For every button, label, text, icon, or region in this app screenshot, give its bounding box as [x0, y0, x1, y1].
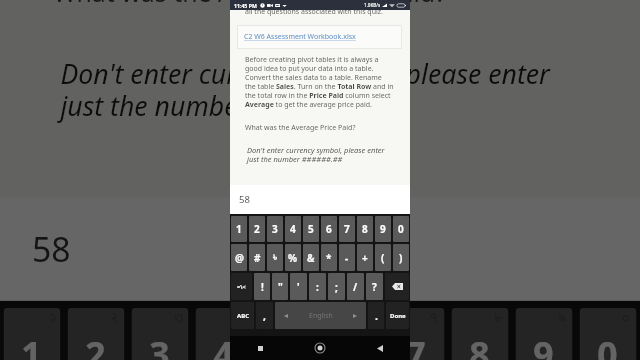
button[interactable]: * [321, 244, 337, 271]
button[interactable]: - [339, 244, 355, 271]
button[interactable]: Done [386, 302, 409, 329]
staticText: ; [335, 280, 338, 294]
button[interactable]: ? [366, 273, 383, 300]
button[interactable]: Recents [230, 336, 290, 360]
button[interactable]: , [256, 302, 273, 329]
staticText: all the questions associated with this q… [245, 7, 383, 17]
staticText: 5 [308, 222, 314, 236]
button[interactable]: 5 [260, 308, 316, 360]
button[interactable]: Home [290, 336, 350, 360]
staticText: 8 [469, 329, 491, 360]
button[interactable]: 7 [388, 308, 444, 360]
staticText: Don't enter currency symbol, please ente… [247, 145, 392, 164]
button[interactable]: 4 [196, 308, 252, 360]
button[interactable]: 4 [285, 216, 301, 242]
button[interactable]: C2 W6 Assessment Workbook.xlsx [237, 25, 402, 49]
staticText: ৯ [387, 216, 390, 221]
staticText: 58 [239, 193, 250, 206]
button[interactable]: English [275, 302, 366, 329]
staticText: , [263, 309, 266, 323]
staticText: Before creating pivot tables it is alway… [245, 55, 394, 109]
button[interactable]: & [303, 244, 319, 271]
staticText: . [375, 309, 378, 323]
button[interactable]: : [309, 273, 326, 300]
button[interactable]: # [249, 244, 265, 271]
staticText: / [353, 280, 358, 294]
staticText: 8 [362, 222, 368, 236]
staticText: ! [261, 280, 264, 294]
button[interactable]: 58 [230, 185, 410, 214]
button[interactable]: Back [350, 336, 410, 360]
staticText: # [254, 251, 261, 265]
staticText: 1 [21, 329, 43, 360]
button[interactable]: 1 [4, 308, 60, 360]
button[interactable]: ' [290, 273, 307, 300]
staticText: 11:45 PM [234, 2, 257, 9]
staticText: Don't enter currency symbol, please ente… [60, 56, 576, 123]
button[interactable]: ) [393, 244, 409, 271]
button[interactable]: 5 [303, 216, 319, 242]
staticText: What was the Average Price Paid? [53, 0, 448, 13]
button[interactable]: 0 [393, 216, 409, 242]
button[interactable]: ; [328, 273, 345, 300]
staticText: ৭ [351, 216, 354, 221]
staticText: 0 [597, 329, 619, 360]
staticText: ) [399, 251, 403, 265]
button[interactable]: 0 [580, 308, 636, 360]
button[interactable]: 9 [516, 308, 572, 360]
staticText: 0 [398, 222, 404, 236]
button[interactable]: / [347, 273, 364, 300]
staticText: 7 [405, 329, 427, 360]
button[interactable]: . [368, 302, 384, 329]
staticText: " [278, 280, 283, 294]
button[interactable]: 3 [132, 308, 188, 360]
button[interactable]: 9 [375, 216, 391, 242]
button[interactable]: 2 [249, 216, 265, 242]
staticText: ৪ [238, 308, 249, 326]
button[interactable]: 8 [452, 308, 508, 360]
button[interactable]: 8 [357, 216, 373, 242]
staticText: * [326, 251, 332, 265]
button[interactable]: 2 [68, 308, 124, 360]
staticText: 1.0KB/s [364, 2, 381, 8]
button[interactable]: ABC [231, 302, 254, 329]
button[interactable]: 3 [267, 216, 283, 242]
button[interactable]: ৳ [267, 244, 283, 271]
staticText: 2 [254, 222, 260, 236]
staticText: + [362, 251, 368, 265]
button[interactable] [385, 273, 409, 300]
staticText: 6 [326, 222, 332, 236]
staticText: ৪ [297, 216, 300, 221]
staticText: 4 [213, 329, 235, 360]
button[interactable]: + [357, 244, 373, 271]
button[interactable]: ( [375, 244, 391, 271]
button[interactable]: 58 [0, 198, 640, 301]
staticText: 5 [277, 329, 299, 360]
button[interactable]: % [285, 244, 301, 271]
staticText: Done [390, 312, 406, 320]
button[interactable]: ! [254, 273, 270, 300]
staticText: 6 [341, 329, 363, 360]
button[interactable]: @ [231, 244, 247, 271]
button[interactable]: 6 [324, 308, 380, 360]
button[interactable]: 6 [321, 216, 337, 242]
staticText: 2 [85, 329, 107, 360]
staticText: ৮ [369, 216, 372, 221]
staticText: C2 W6 Assessment Workbook.xlsx [244, 32, 356, 42]
button[interactable]: =\< [231, 273, 252, 300]
staticText: ABC [237, 312, 249, 320]
button[interactable]: 7 [339, 216, 355, 242]
staticText: : [316, 280, 319, 294]
staticText: - [345, 251, 349, 265]
staticText: & [307, 251, 315, 265]
button[interactable]: 1 [231, 216, 247, 242]
staticText: =\< [237, 283, 246, 290]
button[interactable]: " [272, 273, 288, 300]
staticText: What was the Average Price Paid? [245, 123, 356, 133]
